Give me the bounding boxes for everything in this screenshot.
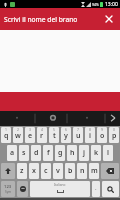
button[interactable]: 7 <box>73 127 83 143</box>
staticText: z <box>20 166 24 176</box>
staticText: s <box>22 148 26 158</box>
button[interactable]: a <box>7 145 17 161</box>
staticText: Scrivi il nome del brano <box>4 15 78 24</box>
staticText: l <box>107 148 109 158</box>
staticText: q <box>4 131 9 141</box>
button[interactable]: v <box>53 163 63 179</box>
button[interactable]: 0 <box>109 127 119 143</box>
staticText: r <box>40 131 44 141</box>
other: Shift <box>1 163 15 179</box>
staticText: f <box>47 148 50 158</box>
button[interactable]: 8 <box>85 127 95 143</box>
staticText: w <box>15 131 21 141</box>
button[interactable]: 2 <box>13 127 23 143</box>
staticText: 13:00 <box>105 1 118 8</box>
staticText: b <box>68 166 73 176</box>
staticText: . <box>95 184 97 192</box>
button[interactable]: Shift <box>1 163 15 179</box>
staticText: 2 <box>17 127 19 132</box>
staticText: 94% <box>92 2 99 7</box>
button[interactable]: n <box>77 163 87 179</box>
staticText: a <box>10 148 15 158</box>
button[interactable]: Space <box>30 181 90 197</box>
button[interactable]: 5 <box>49 127 59 143</box>
button[interactable]: Emoji <box>17 181 28 197</box>
button[interactable]: 9 <box>97 127 107 143</box>
staticText: 0 <box>113 127 115 132</box>
other: Emoji <box>17 181 28 197</box>
button[interactable]: f <box>43 145 53 161</box>
button[interactable]: z <box>17 163 27 179</box>
staticText: p <box>112 131 117 141</box>
other: Search <box>102 181 119 197</box>
staticText: y <box>64 131 68 141</box>
staticText: 6 <box>65 127 67 132</box>
button[interactable]: g <box>55 145 65 161</box>
button[interactable]: 6 <box>61 127 71 143</box>
staticText: e <box>28 131 33 141</box>
button[interactable]: 4 <box>37 127 47 143</box>
staticText: v <box>56 166 60 176</box>
staticText: 1 <box>5 127 7 132</box>
staticText: o <box>100 131 105 141</box>
other: Space <box>30 181 90 197</box>
button[interactable]: l <box>103 145 113 161</box>
staticText: c <box>44 166 48 176</box>
button[interactable]: Search <box>102 181 119 197</box>
button[interactable]: Close <box>98 8 120 30</box>
other: Backspace <box>101 163 119 179</box>
staticText: n <box>80 166 85 176</box>
staticText: g <box>58 148 63 158</box>
staticText: 123 <box>4 184 12 190</box>
staticText: h <box>70 148 75 158</box>
button[interactable]: . <box>92 181 100 197</box>
button[interactable]: b <box>65 163 75 179</box>
button[interactable]: Backspace <box>101 163 119 179</box>
button[interactable] <box>0 111 120 126</box>
staticText: 5 <box>53 127 55 132</box>
staticText: t <box>53 131 56 141</box>
staticText: m <box>91 166 98 176</box>
staticText: 9 <box>101 127 103 132</box>
button[interactable]: k <box>91 145 101 161</box>
staticText: 3 <box>29 127 31 132</box>
staticText: 4 <box>41 127 43 132</box>
button[interactable]: 123 <box>1 181 15 197</box>
button[interactable]: m <box>89 163 99 179</box>
button[interactable]: 1 <box>1 127 11 143</box>
staticText: d <box>34 148 39 158</box>
staticText: i <box>89 131 91 141</box>
button[interactable]: s <box>19 145 29 161</box>
staticText: Sym <box>5 190 11 194</box>
button[interactable]: h <box>67 145 77 161</box>
staticText: 7 <box>77 127 79 132</box>
staticText: u <box>76 131 81 141</box>
button[interactable]: d <box>31 145 41 161</box>
button[interactable]: 3 <box>25 127 35 143</box>
button[interactable]: c <box>41 163 51 179</box>
button[interactable]: j <box>79 145 89 161</box>
staticText: Italiano <box>54 183 66 187</box>
staticText: x <box>32 166 36 176</box>
staticText: 8 <box>89 127 91 132</box>
staticText: j <box>83 148 85 158</box>
button[interactable]: x <box>29 163 39 179</box>
staticText: k <box>94 148 99 158</box>
